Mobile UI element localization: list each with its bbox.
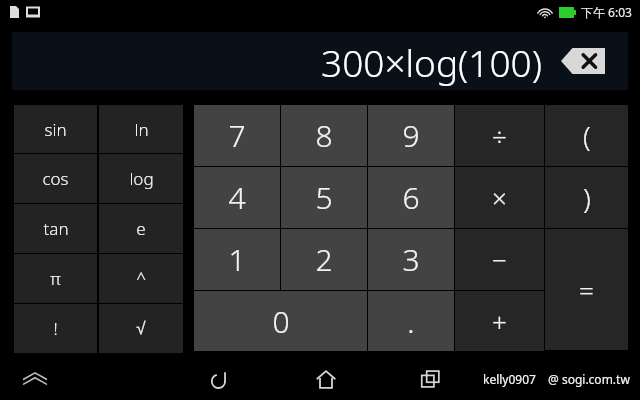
staticText: 2	[315, 239, 333, 280]
button[interactable]: )	[545, 167, 628, 228]
staticText: √	[136, 319, 146, 338]
button[interactable]: 5	[281, 167, 367, 228]
button[interactable]: 4	[194, 167, 280, 228]
staticText: e	[136, 217, 146, 240]
button[interactable]: tan	[14, 204, 97, 253]
button[interactable]: π	[14, 254, 97, 303]
button[interactable]: Home	[304, 361, 348, 397]
staticText: 300×log(100)	[321, 37, 542, 87]
staticText: 4	[228, 177, 246, 218]
staticText: 3	[402, 239, 420, 280]
button[interactable]: ln	[99, 105, 183, 153]
staticText: sin	[44, 118, 67, 141]
button[interactable]: ^	[99, 254, 183, 303]
staticText: ÷	[492, 118, 507, 153]
button[interactable]: log	[99, 154, 183, 203]
button[interactable]: Recent apps	[408, 361, 452, 397]
staticText: π	[50, 267, 61, 290]
button[interactable]: 7	[194, 105, 280, 166]
staticText: 下午 6:03	[581, 4, 632, 20]
button[interactable]: √	[99, 304, 183, 353]
button[interactable]: 8	[281, 105, 367, 166]
button[interactable]: −	[455, 229, 544, 290]
button[interactable]: !	[14, 304, 97, 353]
button[interactable]: 6	[368, 167, 454, 228]
button[interactable]: 2	[281, 229, 367, 290]
staticText: +	[492, 304, 507, 339]
staticText: 6	[402, 177, 420, 218]
button[interactable]: 300×log(100)	[12, 32, 628, 90]
button[interactable]: sin	[14, 105, 97, 153]
staticText: 5	[315, 177, 333, 218]
staticText: cos	[42, 167, 69, 190]
button[interactable]: Backspace	[560, 44, 606, 78]
button[interactable]: =	[545, 229, 628, 350]
button[interactable]: 3	[368, 229, 454, 290]
staticText: !	[53, 317, 58, 340]
staticText: @ sogi.com.tw	[548, 371, 630, 387]
staticText: =	[579, 272, 594, 307]
button[interactable]: ÷	[455, 105, 544, 166]
button[interactable]: 9	[368, 105, 454, 166]
staticText: 7	[228, 115, 246, 156]
button[interactable]: (	[545, 105, 628, 166]
staticText: (	[583, 117, 591, 155]
button[interactable]: 0	[194, 291, 367, 351]
staticText: 0	[272, 301, 290, 342]
staticText: ×	[492, 180, 507, 215]
staticText: 9	[402, 115, 420, 156]
staticText: log	[129, 167, 154, 190]
staticText: tan	[43, 217, 69, 240]
button[interactable]: +	[455, 291, 544, 351]
button[interactable]: cos	[14, 154, 97, 203]
button[interactable]: .	[368, 291, 454, 351]
staticText: ^	[136, 267, 146, 290]
staticText: −	[492, 242, 507, 277]
staticText: 1	[228, 239, 246, 280]
button[interactable]: 1	[194, 229, 280, 290]
staticText: .	[407, 301, 415, 342]
button[interactable]: ×	[455, 167, 544, 228]
button[interactable]: e	[99, 204, 183, 253]
staticText: kelly0907	[483, 371, 536, 387]
staticText: 8	[315, 115, 333, 156]
button[interactable]: Back	[196, 361, 240, 397]
staticText: )	[583, 179, 591, 217]
button[interactable]: Expand	[14, 363, 56, 395]
staticText: ln	[134, 118, 149, 141]
